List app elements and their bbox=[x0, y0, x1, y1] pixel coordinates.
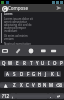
staticText: H bbox=[38, 71, 42, 77]
button[interactable]: ↵ bbox=[54, 93, 64, 99]
staticText: R bbox=[23, 60, 26, 66]
button[interactable]: I bbox=[46, 60, 52, 66]
button[interactable]: C bbox=[24, 82, 30, 88]
staticText: F bbox=[27, 71, 30, 77]
button[interactable]: Photo bbox=[1, 47, 9, 55]
button[interactable]: A bbox=[4, 71, 11, 77]
button[interactable]: N bbox=[42, 82, 48, 88]
button[interactable]: Z bbox=[11, 82, 18, 88]
staticText: Lorem ipsum dolor sit amet consectetur a… bbox=[4, 17, 34, 33]
staticText: Compose bbox=[8, 5, 28, 11]
staticText: ?12 bbox=[2, 93, 9, 99]
button[interactable]: More bbox=[50, 47, 58, 55]
staticText: K bbox=[51, 71, 54, 77]
button[interactable]: H bbox=[37, 71, 43, 77]
button[interactable]: G bbox=[31, 71, 37, 77]
button[interactable]: ?12 bbox=[0, 93, 10, 99]
button[interactable]: ⌫ bbox=[54, 82, 64, 88]
button[interactable]: . bbox=[48, 93, 54, 99]
staticText: W bbox=[8, 60, 13, 66]
button[interactable]: Video bbox=[40, 47, 48, 55]
button[interactable]: P bbox=[58, 60, 64, 66]
staticText: M bbox=[49, 82, 53, 88]
button[interactable]: B bbox=[36, 82, 42, 88]
button[interactable]: L bbox=[55, 71, 61, 77]
staticText: O bbox=[53, 60, 57, 66]
button[interactable]: , bbox=[10, 93, 16, 99]
staticText: N bbox=[43, 82, 47, 88]
staticText: G bbox=[32, 71, 36, 77]
button[interactable]: V bbox=[30, 82, 36, 88]
button[interactable]: D bbox=[18, 71, 25, 77]
button[interactable]: O bbox=[52, 60, 58, 66]
button[interactable]: R bbox=[21, 60, 28, 66]
staticText: E bbox=[16, 60, 19, 66]
staticText: Ut enim ad minim veniam bbox=[4, 34, 34, 41]
button[interactable]: ▲ bbox=[0, 82, 11, 88]
button[interactable]: W bbox=[7, 60, 14, 66]
button[interactable]: X bbox=[18, 82, 24, 88]
staticText: L bbox=[57, 71, 60, 77]
staticText: ↵ bbox=[57, 94, 61, 99]
button[interactable]: K bbox=[49, 71, 55, 77]
staticText: Lorem bbox=[4, 12, 13, 16]
staticText: ▲ bbox=[4, 83, 8, 88]
staticText: V bbox=[32, 82, 35, 88]
button[interactable]: E bbox=[14, 60, 21, 66]
staticText: U bbox=[41, 60, 45, 66]
staticText: Z bbox=[13, 82, 16, 88]
button[interactable]: S bbox=[11, 71, 18, 77]
staticText: G bbox=[3, 6, 7, 12]
button[interactable]: J bbox=[43, 71, 49, 77]
button[interactable]: Y bbox=[34, 60, 40, 66]
staticText: Q bbox=[2, 60, 6, 66]
staticText: C bbox=[26, 82, 29, 88]
button[interactable]: Q bbox=[0, 60, 7, 66]
button[interactable]: M bbox=[48, 82, 54, 88]
button[interactable]: U bbox=[40, 60, 46, 66]
staticText: X bbox=[20, 82, 23, 88]
button[interactable]: T bbox=[28, 60, 34, 66]
button[interactable]: Attach bbox=[14, 47, 22, 55]
staticText: D bbox=[20, 71, 24, 77]
staticText: . bbox=[50, 93, 52, 99]
staticText: J bbox=[45, 71, 47, 77]
staticText: Y bbox=[36, 60, 39, 66]
staticText: ⌫ bbox=[56, 83, 63, 88]
button[interactable]: Send bbox=[55, 4, 63, 12]
button[interactable]: Account bbox=[1, 5, 8, 12]
staticText: T bbox=[30, 60, 33, 66]
button[interactable] bbox=[16, 93, 48, 99]
staticText: I bbox=[48, 60, 50, 66]
staticText: , bbox=[12, 93, 14, 99]
staticText: P bbox=[60, 60, 63, 66]
staticText: S bbox=[13, 71, 16, 77]
staticText: Nostrud exercitation bbox=[4, 42, 31, 45]
button[interactable]: F bbox=[25, 71, 31, 77]
staticText: B bbox=[38, 82, 41, 88]
button[interactable]: Camera bbox=[27, 47, 35, 55]
staticText: A bbox=[6, 71, 9, 77]
